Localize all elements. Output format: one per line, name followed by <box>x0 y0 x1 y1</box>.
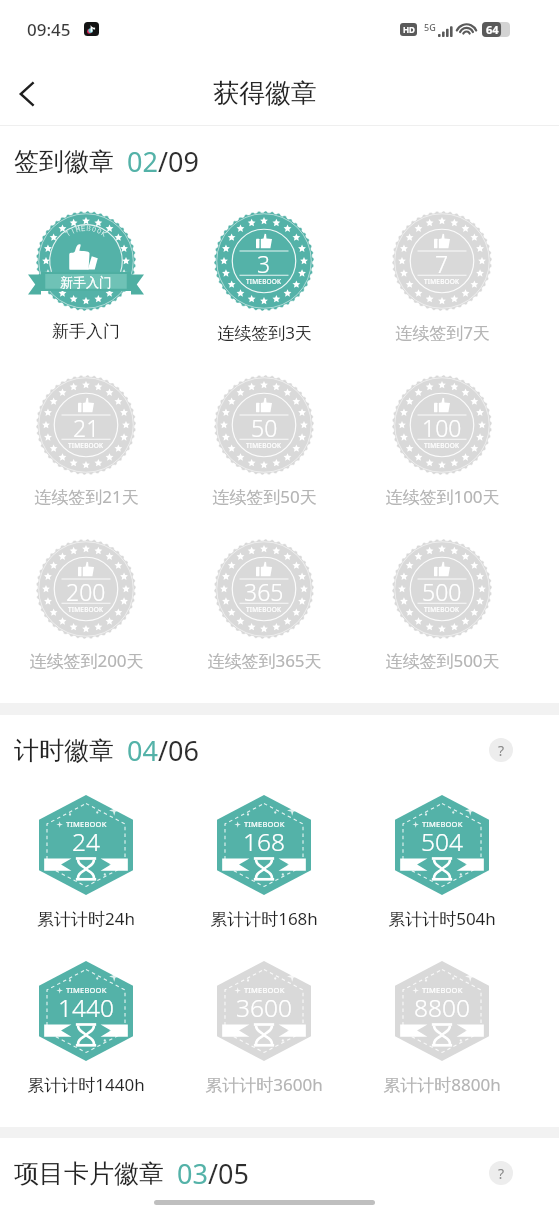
staticText: 100 <box>422 412 462 443</box>
button[interactable]: Help <box>489 1161 513 1185</box>
staticText: 获得徽章 <box>213 77 317 110</box>
staticText: 24 <box>72 825 100 858</box>
button[interactable]: 200 <box>0 539 175 703</box>
staticText: 1440 <box>58 991 114 1024</box>
staticText: 3600 <box>236 991 292 1024</box>
staticText: 连续签到365天 <box>207 649 322 672</box>
staticText: 02/09 <box>127 143 199 180</box>
staticText: TIMEBOOK <box>422 819 463 829</box>
staticText: 累计计时1440h <box>27 1073 145 1096</box>
staticText: 连续签到50天 <box>212 485 317 508</box>
button[interactable]: TIMEBOOK <box>175 961 353 1127</box>
button[interactable]: Back <box>0 67 54 121</box>
staticText: 签到徽章 <box>14 146 114 177</box>
staticText: TIMEBOOK <box>66 985 107 995</box>
button[interactable]: 3 <box>175 211 353 375</box>
button[interactable]: TIMEBOOK <box>353 795 531 961</box>
staticText: 连续签到500天 <box>385 649 500 672</box>
staticText: 连续签到3天 <box>217 321 312 344</box>
button[interactable]: 365 <box>175 539 353 703</box>
button[interactable]: 21 <box>0 375 175 539</box>
staticText: TIMEBOOK <box>244 819 285 829</box>
staticText: ? <box>498 1164 505 1183</box>
button[interactable]: TIMEBOOK <box>0 961 175 1127</box>
staticText: 累计计时168h <box>210 907 318 930</box>
staticText: TIMEBOOK <box>66 819 107 829</box>
staticText: TIMEBOOK <box>246 277 282 286</box>
staticText: 连续签到21天 <box>34 485 139 508</box>
staticText: 64 <box>486 22 499 37</box>
staticText: 200 <box>66 576 106 607</box>
staticText: 新手入门 <box>52 321 120 342</box>
staticText: 计时徽章 <box>14 735 114 766</box>
staticText: 新手入门 <box>60 274 112 290</box>
staticText: 168 <box>243 825 285 858</box>
staticText: 04/06 <box>127 732 199 769</box>
staticText: TIMEBOOK <box>68 605 104 614</box>
staticText: 365 <box>244 576 284 607</box>
button[interactable]: 500 <box>353 539 531 703</box>
staticText: TIMEBOOK <box>246 441 282 450</box>
button[interactable]: TIMEBOOK <box>175 795 353 961</box>
staticText: 累计计时24h <box>37 907 135 930</box>
staticText: 504 <box>421 825 463 858</box>
staticText: TIMEBOOK <box>422 985 463 995</box>
staticText: 项目卡片徽章 <box>14 1158 164 1189</box>
staticText: ? <box>498 741 505 760</box>
button[interactable]: 7 <box>353 211 531 375</box>
button[interactable]: TIMEBOOK <box>353 961 531 1127</box>
button[interactable]: Help <box>489 738 513 762</box>
staticText: TIMEBOOK <box>246 605 282 614</box>
staticText: TIMEBOOK <box>68 441 104 450</box>
staticText: 累计计时504h <box>388 907 496 930</box>
staticText: 累计计时3600h <box>205 1073 323 1096</box>
staticText: 50 <box>251 412 278 443</box>
staticText: 3 <box>257 248 271 279</box>
staticText: TIMEBOOK <box>244 985 285 995</box>
staticText: TIMEBOOK <box>424 441 460 450</box>
button[interactable]: TIMEBOOK <box>0 795 175 961</box>
staticText: 03/05 <box>177 1155 249 1192</box>
staticText: 7 <box>435 248 449 279</box>
button[interactable]: 100 <box>353 375 531 539</box>
staticText: 连续签到200天 <box>29 649 144 672</box>
staticText: 21 <box>73 412 100 443</box>
button[interactable]: 新手入门 <box>0 211 175 373</box>
staticText: 5G <box>424 21 436 33</box>
staticText: 500 <box>422 576 462 607</box>
staticText: TIMEBOOK <box>424 605 460 614</box>
staticText: 8800 <box>414 991 470 1024</box>
staticText: 连续签到100天 <box>385 485 500 508</box>
staticText: 累计计时8800h <box>383 1073 501 1096</box>
button[interactable]: 50 <box>175 375 353 539</box>
staticText: TIMEBOOK <box>424 277 460 286</box>
staticText: HD <box>403 24 415 35</box>
staticText: 连续签到7天 <box>395 321 490 344</box>
staticText: 09:45 <box>27 18 71 41</box>
